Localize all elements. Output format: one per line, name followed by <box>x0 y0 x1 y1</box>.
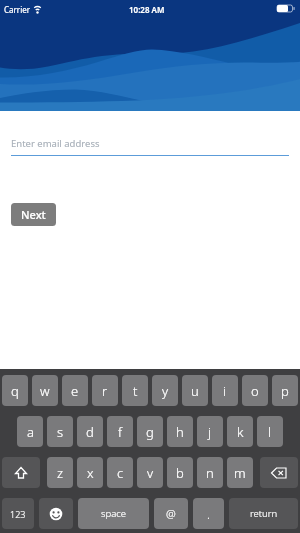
button[interactable]: g <box>137 416 163 447</box>
staticText: t <box>133 382 138 400</box>
button[interactable]: d <box>77 416 103 447</box>
staticText: a <box>27 423 34 441</box>
button[interactable] <box>39 498 73 529</box>
staticText: z <box>57 464 64 482</box>
staticText: 123 <box>10 508 26 520</box>
staticText: 10:28 AM <box>129 4 165 15</box>
button[interactable]: . <box>193 498 224 529</box>
staticText: space <box>101 507 126 520</box>
button[interactable]: v <box>137 457 163 488</box>
staticText: r <box>102 382 108 400</box>
button[interactable] <box>2 457 40 488</box>
staticText: y <box>162 382 169 400</box>
button[interactable]: u <box>182 375 208 406</box>
staticText: @ <box>166 506 176 521</box>
staticText: s <box>57 423 64 441</box>
staticText: v <box>147 464 154 482</box>
button[interactable]: @ <box>154 498 188 529</box>
button[interactable]: space <box>78 498 149 529</box>
staticText: e <box>71 382 79 400</box>
staticText: Enter email address <box>11 137 100 150</box>
staticText: p <box>281 382 289 400</box>
staticText: . <box>207 506 210 522</box>
staticText: k <box>237 423 244 441</box>
button[interactable]: k <box>227 416 253 447</box>
staticText: m <box>234 464 246 482</box>
button[interactable]: Next <box>11 203 56 226</box>
staticText: Next <box>21 207 46 222</box>
button[interactable]: a <box>17 416 43 447</box>
button[interactable]: n <box>197 457 223 488</box>
button[interactable] <box>260 457 298 488</box>
button[interactable]: x <box>77 457 103 488</box>
button[interactable]: Enter email address <box>11 132 289 157</box>
button[interactable]: q <box>2 375 28 406</box>
button[interactable]: b <box>167 457 193 488</box>
staticText: u <box>191 382 199 400</box>
button[interactable]: m <box>227 457 253 488</box>
staticText: b <box>176 464 184 482</box>
button[interactable]: j <box>197 416 223 447</box>
button[interactable]: f <box>107 416 133 447</box>
staticText: q <box>11 382 19 400</box>
button[interactable]: e <box>62 375 88 406</box>
staticText: h <box>176 423 184 441</box>
staticText: f <box>118 423 123 441</box>
button[interactable]: s <box>47 416 73 447</box>
button[interactable]: return <box>229 498 298 529</box>
button[interactable]: t <box>122 375 148 406</box>
button[interactable]: 123 <box>2 498 34 529</box>
button[interactable]: p <box>272 375 298 406</box>
staticText: i <box>223 382 227 400</box>
button[interactable]: z <box>47 457 73 488</box>
button[interactable]: c <box>107 457 133 488</box>
button[interactable]: y <box>152 375 178 406</box>
button[interactable]: i <box>212 375 238 406</box>
staticText: g <box>146 423 154 441</box>
button[interactable]: l <box>257 416 283 447</box>
staticText: c <box>117 464 124 482</box>
staticText: Carrier <box>4 4 31 15</box>
staticText: o <box>251 382 259 400</box>
staticText: j <box>208 423 212 441</box>
staticText: return <box>250 507 278 520</box>
staticText: x <box>87 464 94 482</box>
staticText: l <box>268 423 272 441</box>
button[interactable]: o <box>242 375 268 406</box>
button[interactable]: r <box>92 375 118 406</box>
button[interactable]: w <box>32 375 58 406</box>
staticText: d <box>86 423 94 441</box>
button[interactable]: h <box>167 416 193 447</box>
staticText: w <box>40 382 50 400</box>
staticText: n <box>206 464 214 482</box>
